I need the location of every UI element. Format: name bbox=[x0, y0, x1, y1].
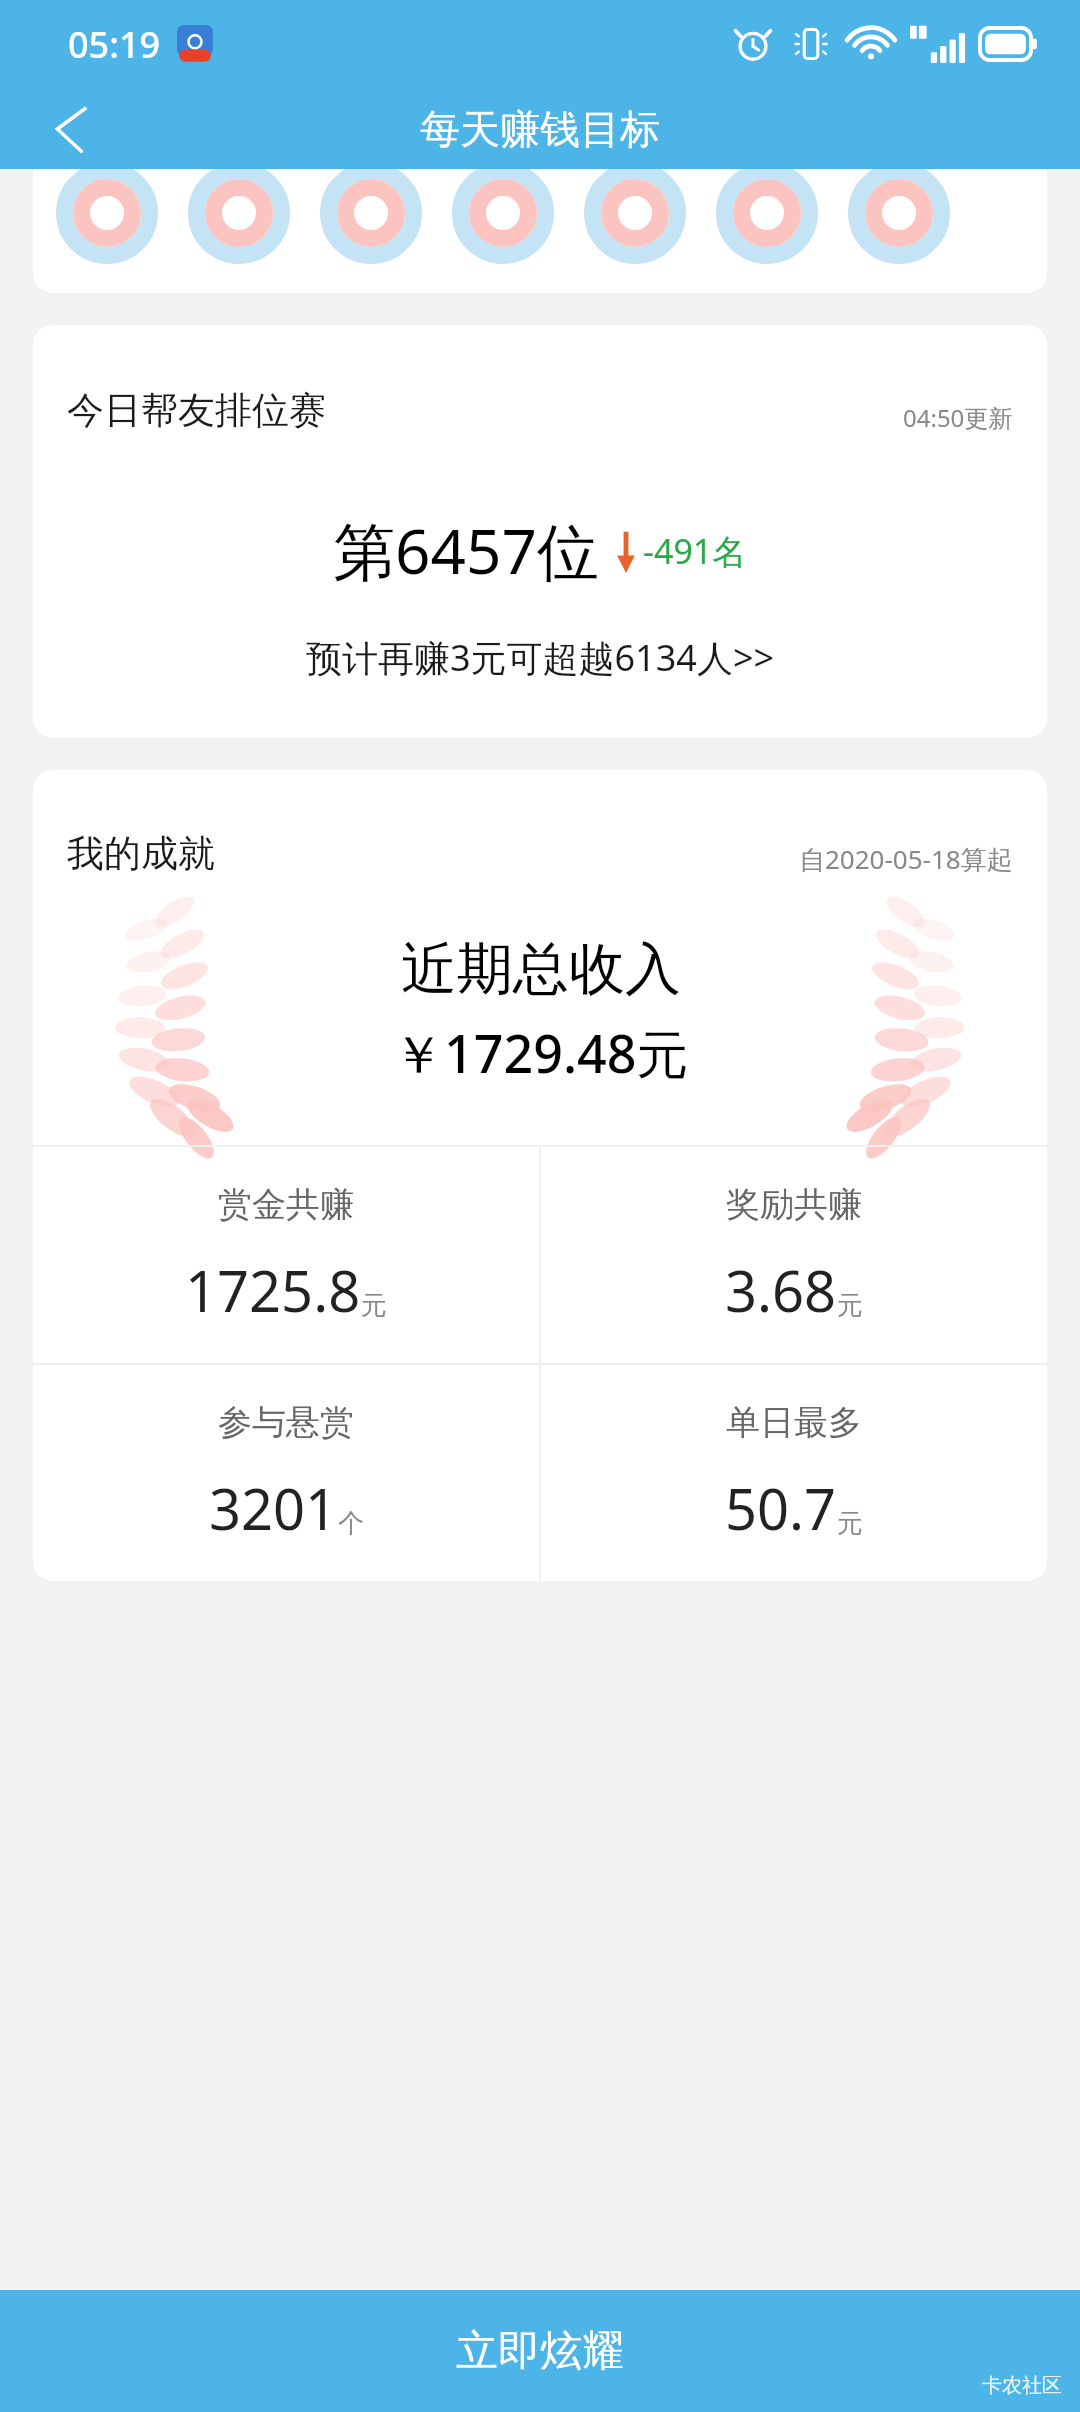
staticText: 第6457位 bbox=[333, 508, 599, 593]
staticText: 立即炫耀 bbox=[456, 2325, 624, 2378]
button[interactable]: 奖励共赚 bbox=[541, 1147, 1047, 1363]
button[interactable]: Back bbox=[24, 88, 120, 169]
button[interactable]: 单日最多 bbox=[541, 1365, 1047, 1581]
staticText: 1725.8 bbox=[185, 1252, 361, 1328]
staticText: 元 bbox=[361, 1289, 387, 1322]
staticText: -491名 bbox=[643, 528, 747, 574]
button[interactable]: 今日帮友排位赛 bbox=[33, 325, 1047, 738]
staticText: 05:19 bbox=[68, 20, 161, 69]
button[interactable] bbox=[33, 169, 1047, 293]
staticText: 赏金共赚 bbox=[218, 1183, 354, 1226]
staticText: 单日最多 bbox=[726, 1401, 862, 1444]
staticText: 我的成就 bbox=[67, 830, 215, 877]
staticText: 今日帮友排位赛 bbox=[67, 387, 326, 434]
staticText: 3201 bbox=[209, 1470, 338, 1546]
staticText: 预计再赚3元可超越6134人>> bbox=[33, 633, 1047, 682]
button[interactable]: 立即炫耀 bbox=[0, 2290, 1080, 2412]
staticText: 卡农社区 bbox=[982, 2373, 1062, 2398]
button[interactable]: 参与悬赏 bbox=[33, 1365, 539, 1581]
staticText: 元 bbox=[837, 1289, 863, 1322]
staticText: 近期总收入 bbox=[401, 934, 681, 1005]
staticText: 每天赚钱目标 bbox=[420, 104, 660, 154]
staticText: 50.7 bbox=[725, 1470, 837, 1546]
button[interactable]: 赏金共赚 bbox=[33, 1147, 539, 1363]
staticText: 奖励共赚 bbox=[726, 1183, 862, 1226]
staticText: 自2020-05-18算起 bbox=[799, 841, 1013, 877]
staticText: 元 bbox=[837, 1507, 863, 1540]
staticText: ￥1729.48元 bbox=[392, 1017, 689, 1088]
staticText: 参与悬赏 bbox=[218, 1401, 354, 1444]
staticText: 04:50更新 bbox=[903, 401, 1013, 434]
staticText: 个 bbox=[338, 1507, 364, 1540]
staticText: 3.68 bbox=[725, 1252, 837, 1328]
